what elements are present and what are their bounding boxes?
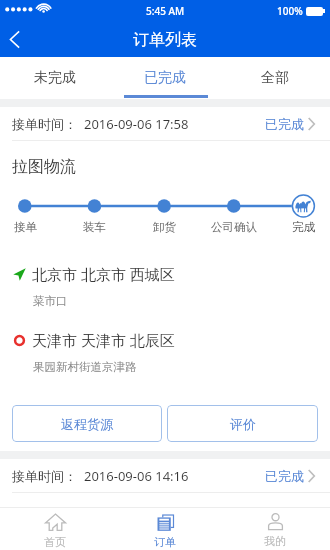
staticText: 订单 bbox=[154, 535, 176, 549]
button[interactable]: 接单时间： bbox=[0, 459, 330, 493]
staticText: 装车 bbox=[83, 220, 106, 234]
staticText: 首页 bbox=[44, 535, 66, 549]
staticText: 卸货 bbox=[153, 220, 176, 234]
staticText: 未完成 bbox=[34, 69, 76, 87]
staticText: 果园新村街道京津路 bbox=[33, 360, 137, 374]
staticText: 天津市 天津市 北辰区 bbox=[32, 330, 175, 350]
button[interactable]: 已完成 bbox=[110, 57, 220, 99]
button[interactable]: 全部 bbox=[220, 57, 330, 99]
staticText: 已完成 bbox=[265, 468, 304, 484]
staticText: 公司确认 bbox=[211, 220, 257, 234]
staticText: 已完成 bbox=[265, 116, 304, 132]
staticText: 北京市 北京市 西城区 bbox=[32, 264, 175, 284]
staticText: 2016-09-06 14:16 bbox=[84, 467, 189, 485]
staticText: 我的 bbox=[264, 534, 286, 548]
staticText: 接单 bbox=[14, 220, 37, 234]
button[interactable]: 返程货源 bbox=[12, 405, 162, 442]
staticText: 拉图物流 bbox=[12, 157, 76, 177]
staticText: 100% bbox=[277, 4, 303, 18]
staticText: 评价 bbox=[230, 416, 256, 432]
button[interactable]: 评价 bbox=[167, 405, 318, 442]
button[interactable]: Back bbox=[0, 22, 28, 57]
staticText: 订单列表 bbox=[133, 30, 197, 50]
staticText: 2016-09-06 17:58 bbox=[84, 115, 189, 133]
staticText: 全部 bbox=[261, 69, 289, 87]
staticText: 已完成 bbox=[144, 69, 186, 87]
staticText: 完成 bbox=[292, 220, 315, 234]
button[interactable]: 订单 bbox=[110, 508, 220, 550]
staticText: 返程货源 bbox=[61, 416, 113, 432]
staticText: 5:45 AM bbox=[146, 4, 185, 18]
button[interactable]: 接单时间： bbox=[0, 107, 330, 141]
button[interactable]: 首页 bbox=[0, 508, 110, 550]
staticText: 接单时间： bbox=[12, 468, 77, 484]
button[interactable]: 我的 bbox=[220, 508, 330, 550]
staticText: 接单时间： bbox=[12, 116, 77, 132]
staticText: 菜市口 bbox=[33, 294, 68, 308]
button[interactable]: 未完成 bbox=[0, 57, 110, 99]
